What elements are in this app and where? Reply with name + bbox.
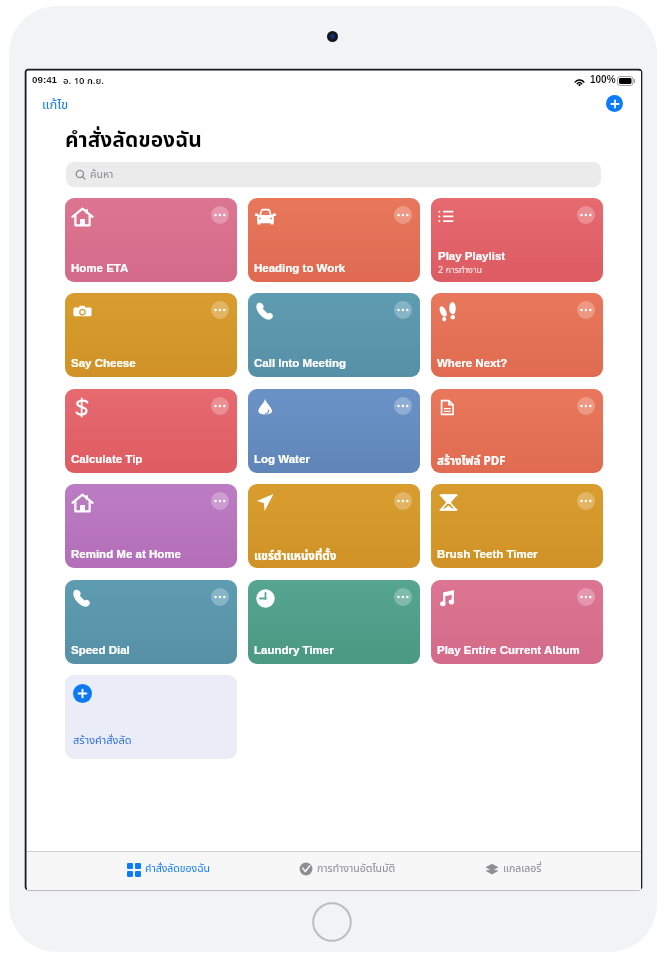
- button[interactable]: More options: [394, 492, 412, 510]
- button[interactable]: Add shortcut: [606, 95, 623, 112]
- staticText: อ. 10 ก.ย.: [63, 74, 104, 88]
- button[interactable]: More options: [577, 301, 595, 319]
- button[interactable]: More options: [65, 389, 237, 473]
- staticText: Calculate Tip: [71, 453, 143, 466]
- staticText: 100%: [590, 74, 616, 85]
- button[interactable]: More options: [431, 580, 603, 664]
- button[interactable]: More options: [394, 588, 412, 606]
- staticText: Speed Dial: [71, 644, 130, 657]
- button[interactable]: More options: [431, 198, 603, 282]
- button[interactable]: More options: [577, 588, 595, 606]
- button[interactable]: More options: [431, 293, 603, 377]
- staticText: แชร์ตำแหน่งที่ตั้ง: [254, 548, 337, 565]
- button[interactable]: More options: [211, 301, 229, 319]
- staticText: คำสั่งลัดของฉัน: [65, 125, 202, 157]
- button[interactable]: More options: [431, 389, 603, 473]
- button[interactable]: More options: [211, 397, 229, 415]
- staticText: Play Entire Current Album: [437, 644, 580, 657]
- button[interactable]: คำสั่งลัดของฉัน: [121, 855, 217, 883]
- staticText: 09:41: [32, 74, 58, 85]
- button[interactable]: แกลเลอรี่: [479, 855, 548, 883]
- staticText: Heading to Work: [254, 262, 346, 275]
- button[interactable]: สร้างคำสั่งลัด: [65, 675, 237, 759]
- staticText: Say Cheese: [71, 357, 136, 370]
- button[interactable]: More options: [248, 198, 420, 282]
- staticText: แก้ไข: [42, 95, 69, 115]
- button[interactable]: More options: [65, 580, 237, 664]
- button[interactable]: More options: [394, 301, 412, 319]
- staticText: คำสั่งลัดของฉัน: [145, 861, 211, 877]
- button[interactable]: More options: [211, 206, 229, 224]
- staticText: 2 การทำงาน: [438, 263, 483, 277]
- button[interactable]: More options: [577, 492, 595, 510]
- staticText: Log Water: [254, 453, 310, 466]
- staticText: Where Next?: [437, 357, 508, 370]
- staticText: สร้างไฟล์ PDF: [437, 453, 506, 470]
- button[interactable]: ค้นหา: [66, 162, 601, 187]
- button[interactable]: More options: [577, 206, 595, 224]
- staticText: ค้นหา: [90, 167, 114, 183]
- button[interactable]: More options: [65, 293, 237, 377]
- button[interactable]: More options: [431, 484, 603, 568]
- staticText: แกลเลอรี่: [503, 861, 542, 877]
- button[interactable]: More options: [211, 492, 229, 510]
- button[interactable]: More options: [394, 206, 412, 224]
- button[interactable]: More options: [577, 397, 595, 415]
- button[interactable]: More options: [248, 293, 420, 377]
- button[interactable]: More options: [248, 389, 420, 473]
- staticText: Remind Me at Home: [71, 548, 181, 561]
- button[interactable]: การทำงานอัตโนมัติ: [293, 855, 402, 883]
- staticText: Brush Teeth Timer: [437, 548, 538, 561]
- button[interactable]: More options: [211, 588, 229, 606]
- button[interactable]: แก้ไข: [36, 91, 75, 119]
- staticText: การทำงานอัตโนมัติ: [317, 861, 396, 877]
- button[interactable]: More options: [394, 397, 412, 415]
- button[interactable]: More options: [248, 580, 420, 664]
- button[interactable]: More options: [248, 484, 420, 568]
- button[interactable]: More options: [65, 484, 237, 568]
- staticText: Laundry Timer: [254, 644, 334, 657]
- staticText: Call Into Meeting: [254, 357, 346, 370]
- staticText: สร้างคำสั่งลัด: [73, 732, 132, 749]
- staticText: Home ETA: [71, 262, 129, 275]
- button[interactable]: More options: [65, 198, 237, 282]
- staticText: Play Playlist: [438, 250, 506, 263]
